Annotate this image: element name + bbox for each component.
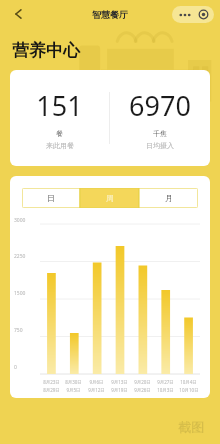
staticText: 9月27日 (157, 379, 174, 385)
staticText: 营养中心 (12, 40, 80, 61)
staticText: 2250 (14, 253, 26, 260)
staticText: 9月26日 (134, 387, 151, 393)
staticText: 10月3日 (157, 387, 174, 393)
staticText: 9月12日 (88, 387, 105, 393)
staticText: 截图 (178, 419, 204, 435)
button[interactable]: 151 (10, 70, 109, 166)
staticText: 9月5日 (66, 387, 81, 393)
button[interactable]: 月 (139, 188, 198, 208)
button[interactable]: Back (6, 3, 28, 25)
staticText: 10月4日 (180, 379, 197, 385)
staticText: 智慧餐厅 (92, 9, 128, 20)
staticText: 6970 (129, 87, 191, 124)
staticText: 9月19日 (111, 387, 128, 393)
button[interactable]: 日 (22, 188, 80, 208)
staticText: 8月30日 (65, 379, 82, 385)
staticText: 151 (36, 87, 83, 124)
staticText: 日均摄入 (146, 141, 174, 150)
button[interactable]: 周 (80, 188, 139, 208)
staticText: 10月10日 (179, 387, 199, 393)
button[interactable]: Mini program menu (172, 6, 214, 23)
staticText: 1500 (14, 290, 26, 297)
staticText: 来此用餐 (46, 141, 74, 150)
staticText: 750 (14, 327, 23, 334)
staticText: 9月20日 (134, 379, 151, 385)
staticText: 餐 (56, 129, 63, 138)
staticText: 日 (47, 193, 55, 203)
staticText: 0 (14, 364, 17, 371)
button[interactable]: 6970 (110, 70, 210, 166)
staticText: 千焦 (153, 129, 167, 138)
staticText: 周 (106, 193, 114, 203)
staticText: 3000 (14, 217, 26, 224)
staticText: 8月23日 (43, 379, 60, 385)
staticText: 9月6日 (89, 379, 104, 385)
staticText: 8月29日 (43, 387, 60, 393)
staticText: 月 (165, 193, 173, 203)
staticText: 9月13日 (111, 379, 128, 385)
